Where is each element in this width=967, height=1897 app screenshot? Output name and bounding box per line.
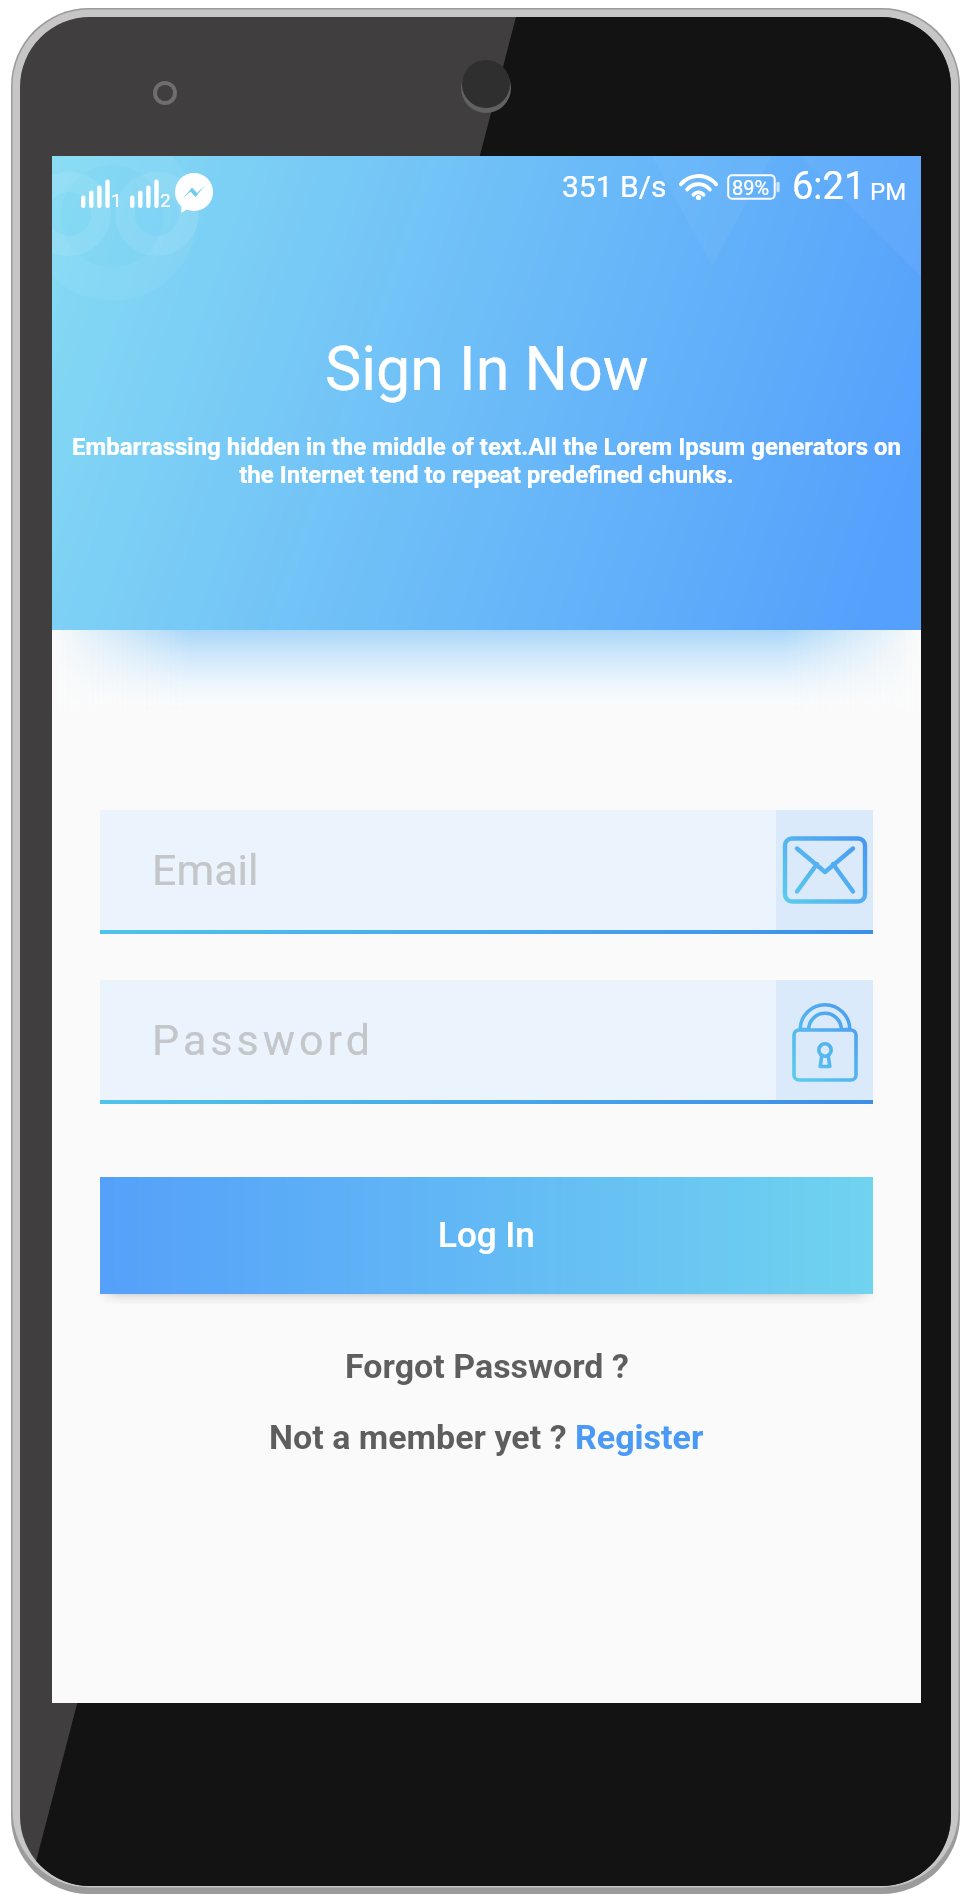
staticText: PM	[870, 178, 907, 206]
staticText: Embarrassing hidden in the middle of tex…	[66, 433, 907, 489]
staticText: 89%	[732, 176, 770, 199]
staticText: 1	[111, 189, 122, 211]
staticText: Log In	[438, 1215, 535, 1256]
staticText: Password	[152, 1015, 374, 1065]
button[interactable]: Not a member yet ? Register	[52, 1409, 921, 1465]
button[interactable]: Log In	[100, 1177, 873, 1294]
staticText: Not a member yet ? Register	[269, 1417, 704, 1457]
staticText: 2	[160, 189, 171, 211]
button[interactable]: Forgot Password ?	[52, 1338, 921, 1394]
other: Email	[776, 810, 873, 930]
staticText: Forgot Password ?	[345, 1346, 629, 1386]
staticText: Email	[152, 845, 259, 895]
other: Password	[776, 980, 873, 1100]
button[interactable]: Email	[100, 810, 873, 930]
staticText: 6:21	[792, 164, 866, 209]
button[interactable]: Password	[100, 980, 873, 1100]
staticText: Sign In Now	[325, 333, 649, 404]
staticText: 351 B/s	[562, 169, 667, 204]
